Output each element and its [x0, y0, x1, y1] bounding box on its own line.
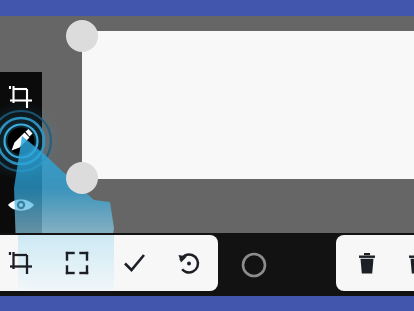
button[interactable]: Delete — [350, 247, 384, 281]
button[interactable]: Preview — [4, 188, 38, 222]
button[interactable]: Crop — [4, 80, 38, 114]
button[interactable]: Undo — [172, 246, 206, 280]
button[interactable]: Done — [117, 246, 151, 280]
button[interactable]: Crop handle top — [66, 20, 98, 52]
button[interactable]: Home — [241, 252, 267, 278]
button[interactable]: More — [400, 247, 414, 281]
button[interactable]: Crop — [4, 246, 38, 280]
button[interactable]: Crop handle bottom — [66, 162, 98, 194]
button[interactable]: Draw — [5, 125, 37, 157]
button[interactable]: Fit to screen — [60, 246, 94, 280]
